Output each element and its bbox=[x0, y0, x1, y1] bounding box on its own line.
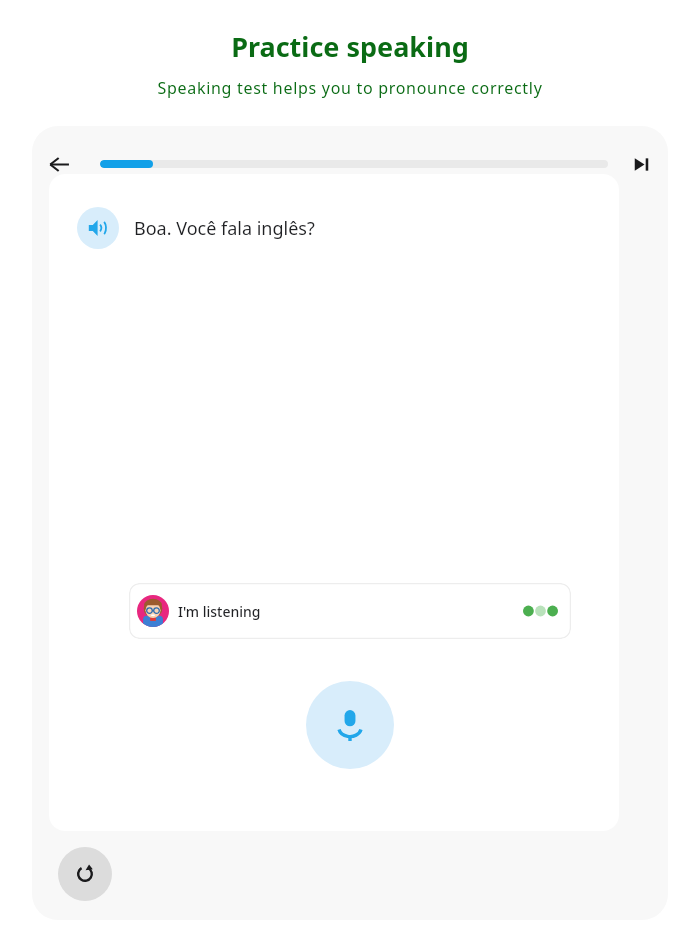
staticText: I'm listening bbox=[178, 602, 261, 621]
button[interactable]: Back bbox=[40, 145, 78, 183]
button[interactable]: Play audio bbox=[77, 207, 315, 249]
other: Play audio bbox=[77, 207, 119, 249]
button[interactable]: Skip to end bbox=[624, 147, 658, 181]
staticText: Practice speaking bbox=[0, 28, 700, 65]
button[interactable]: I'm listening bbox=[129, 583, 571, 639]
staticText: Speaking test helps you to pronounce cor… bbox=[0, 77, 700, 99]
button[interactable]: Record bbox=[306, 681, 394, 769]
staticText: Boa. Você fala inglês? bbox=[134, 216, 315, 241]
button[interactable]: Replay bbox=[58, 847, 112, 901]
